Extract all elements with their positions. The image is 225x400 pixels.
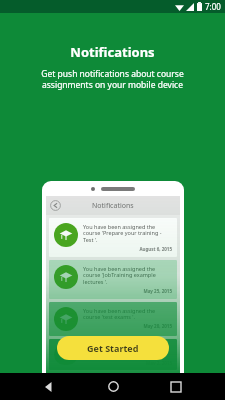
button[interactable]: You have been assigned the course 'test … (49, 302, 177, 336)
staticText: You have been assigned the course 'test … (83, 307, 172, 321)
button[interactable]: Get Started (57, 336, 169, 360)
staticText: You have been assigned the course 'demo … (83, 344, 172, 358)
button[interactable]: Back (34, 373, 64, 400)
button[interactable]: Home (98, 373, 128, 400)
staticText: Get Started (87, 342, 139, 354)
staticText: May 25, 2015 (83, 288, 172, 294)
button[interactable]: Recent apps (161, 373, 191, 400)
staticText: 7:00 (205, 1, 221, 12)
button[interactable]: You have been assigned the course 'JobTr… (49, 260, 177, 299)
staticText: May 20, 2015 (83, 323, 172, 329)
button[interactable]: You have been assigned the course 'Prepa… (49, 218, 177, 257)
staticText: Notifications (0, 43, 225, 61)
button[interactable]: You have been assigned the course 'demo … (49, 339, 177, 370)
staticText: You have been assigned the course 'Prepa… (83, 223, 172, 244)
button[interactable]: Back (50, 200, 61, 211)
staticText: Notifications (92, 201, 134, 211)
staticText: Get push notifications about course assi… (10, 68, 215, 90)
staticText: You have been assigned the course 'JobTr… (83, 265, 172, 286)
staticText: August 6, 2015 (83, 246, 172, 252)
